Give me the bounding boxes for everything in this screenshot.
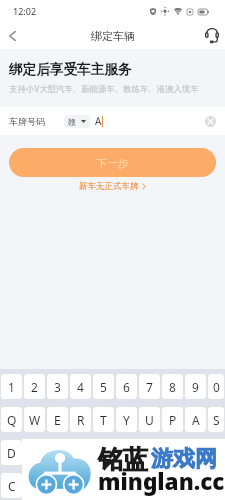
staticText: 0 (213, 379, 220, 395)
staticText: N (76, 478, 86, 494)
staticText: T (100, 412, 107, 428)
staticText: G (53, 445, 62, 461)
staticText: 8 (169, 379, 176, 395)
button[interactable]: 1 (1, 374, 22, 399)
staticText: 1 (8, 379, 15, 395)
staticText: 绑定车辆 (91, 29, 135, 43)
staticText: K (123, 445, 131, 461)
button[interactable]: A (185, 407, 206, 432)
staticText: 6 (123, 379, 130, 395)
staticText: Q (7, 412, 17, 428)
staticText: B (54, 478, 62, 494)
staticText: 7 (146, 379, 153, 395)
staticText: W (29, 412, 41, 428)
button[interactable]: T (93, 407, 114, 432)
button[interactable]: Z (162, 440, 183, 465)
button[interactable]: 0 (208, 374, 224, 399)
button[interactable]: Clear (205, 116, 216, 127)
staticText: 2 (31, 379, 38, 395)
staticText: J (102, 445, 106, 461)
button[interactable]: U (139, 407, 160, 432)
staticText: V (31, 478, 39, 494)
button[interactable]: 9 (185, 374, 206, 399)
staticText: 12:02 (13, 5, 37, 17)
staticText: minglan.cc (98, 466, 225, 497)
button[interactable]: C (1, 473, 22, 498)
staticText: 铭蓝 (98, 444, 148, 475)
button[interactable]: D (1, 440, 22, 465)
staticText: 游戏网 (151, 445, 217, 473)
button[interactable]: H (70, 440, 91, 465)
staticText: 5 (100, 379, 107, 395)
button[interactable]: 下一步 (9, 148, 216, 177)
button[interactable]: M (93, 473, 114, 498)
button[interactable]: G (47, 440, 68, 465)
staticText: R (77, 412, 85, 428)
button[interactable]: F (24, 440, 45, 465)
button[interactable]: 3 (47, 374, 68, 399)
button[interactable]: E (47, 407, 68, 432)
button[interactable]: 7 (139, 374, 160, 399)
button[interactable]: 8 (162, 374, 183, 399)
button[interactable]: 5 (93, 374, 114, 399)
button[interactable]: S (208, 407, 224, 432)
button[interactable]: B (47, 473, 68, 498)
button[interactable]: Back (0, 22, 24, 49)
button[interactable]: Q (1, 407, 22, 432)
button[interactable]: 赣 (64, 115, 90, 128)
staticText: 新车无正式车牌 (79, 181, 139, 192)
button[interactable]: 6 (116, 374, 137, 399)
staticText: S (213, 412, 220, 428)
staticText: 赣 (68, 117, 76, 127)
button[interactable]: W (24, 407, 45, 432)
staticText: E (54, 412, 61, 428)
button[interactable]: L (139, 440, 160, 465)
button[interactable]: K (116, 440, 137, 465)
staticText: C (8, 478, 16, 494)
staticText: Y (123, 412, 130, 428)
button[interactable]: 新车无正式车牌 (73, 179, 152, 194)
staticText: 3 (54, 379, 61, 395)
staticText: A (192, 412, 200, 428)
staticText: 9 (192, 379, 199, 395)
staticText: 下一步 (96, 156, 129, 170)
button[interactable]: N (70, 473, 91, 498)
staticText: X (192, 445, 200, 461)
button[interactable]: R (70, 407, 91, 432)
staticText: Z (169, 445, 176, 461)
staticText: H (76, 445, 85, 461)
staticText: 支持小V大型汽车、新能源车、教练车、港澳入境车 (9, 83, 199, 94)
button[interactable]: Y (116, 407, 137, 432)
staticText: A (95, 114, 102, 128)
button[interactable]: Customer service (200, 22, 223, 49)
button[interactable]: 2 (24, 374, 45, 399)
staticText: D (7, 445, 16, 461)
button[interactable]: J (93, 440, 114, 465)
staticText: 4 (77, 379, 84, 395)
staticText: 车牌号码 (9, 116, 45, 127)
button[interactable]: 4 (70, 374, 91, 399)
staticText: M (98, 478, 109, 494)
button[interactable]: V (24, 473, 45, 498)
staticText: 绑定后享受车主服务 (9, 61, 132, 78)
staticText: U (145, 412, 154, 428)
button[interactable]: P (162, 407, 183, 432)
staticText: L (146, 445, 153, 461)
staticText: P (169, 412, 177, 428)
button[interactable]: X (185, 440, 206, 465)
